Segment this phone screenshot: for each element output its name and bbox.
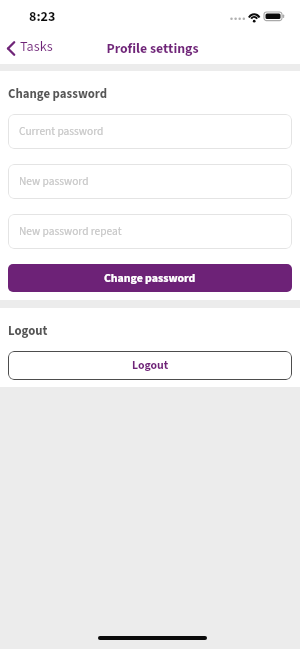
button[interactable]: Change password [8, 264, 292, 292]
other: Battery [264, 12, 286, 21]
other: Cellular signal [230, 15, 245, 22]
button[interactable]: Current password [8, 114, 292, 149]
staticText: Profile settings [106, 39, 199, 59]
staticText: Logout [132, 357, 169, 374]
button[interactable]: Logout [8, 351, 292, 380]
staticText: Current password [19, 123, 104, 139]
staticText: Logout [8, 322, 48, 340]
other: Wi-Fi [248, 11, 261, 22]
staticText: Change password [8, 85, 108, 103]
staticText: Change password [104, 270, 196, 287]
staticText: New password repeat [19, 223, 122, 239]
button[interactable]: Tasks [0, 33, 62, 64]
button[interactable]: New password repeat [8, 214, 292, 249]
staticText: New password [19, 173, 89, 189]
button[interactable]: New password [8, 164, 292, 199]
staticText: Tasks [20, 36, 53, 56]
staticText: 8:23 [29, 7, 56, 27]
